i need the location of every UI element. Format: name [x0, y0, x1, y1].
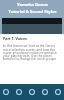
button[interactable]: Sounds: [38, 89, 51, 95]
button[interactable]: More: [51, 89, 64, 95]
button[interactable]: Play video: [2, 18, 62, 34]
staticText: In this lesson we look at the Genos voic…: [3, 44, 61, 61]
button[interactable]: Videos: [12, 89, 25, 95]
staticText: Part 1: Voices: [3, 36, 27, 41]
button[interactable]: Home: [0, 89, 12, 95]
staticText: Tutorial & Sound Styles: [8, 9, 57, 15]
button[interactable]: Styles: [25, 89, 38, 95]
staticText: Yamaha Genos: [17, 2, 48, 8]
